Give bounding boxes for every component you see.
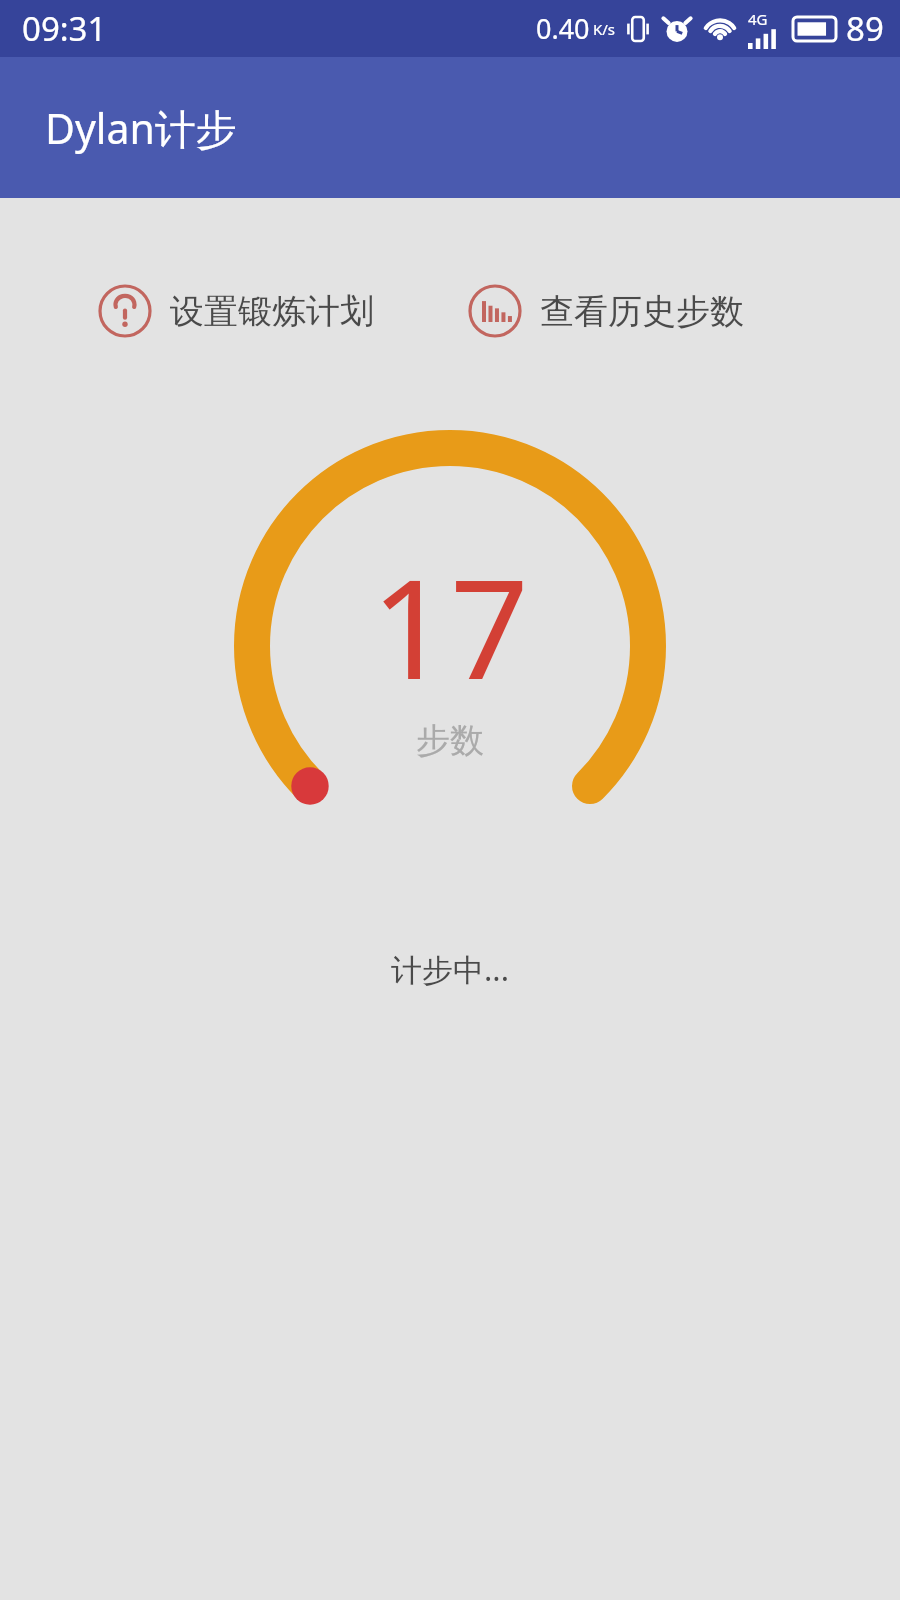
staticText: 89 [846,6,884,51]
staticText: 设置锻炼计划 [170,290,374,333]
staticText: 0.40 [536,10,590,47]
staticText: K/s [593,19,616,39]
button[interactable]: 查看历史步数 [468,278,744,344]
other: 查看历史步数 [468,284,522,338]
staticText: 17 [371,531,529,719]
staticText: 4G [748,9,768,29]
staticText: 步数 [416,719,484,762]
staticText: 09:31 [22,6,107,51]
other: 设置锻炼计划 [98,284,152,338]
staticText: 查看历史步数 [540,290,744,333]
staticText: Dylan计步 [45,100,237,156]
staticText: 计步中... [0,948,900,990]
button[interactable]: 设置锻炼计划 [98,278,374,344]
